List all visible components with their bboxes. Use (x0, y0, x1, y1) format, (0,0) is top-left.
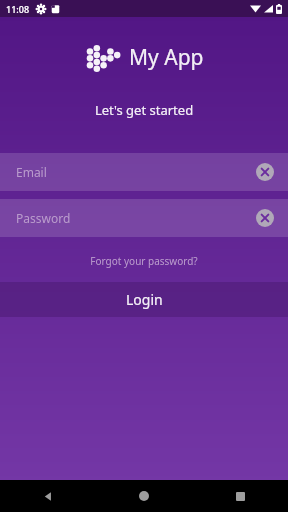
staticText: Let's get started (0, 101, 288, 119)
button[interactable]: Clear Password (256, 209, 274, 227)
staticText: Login (126, 290, 163, 309)
button[interactable]: Recents (192, 480, 288, 512)
button[interactable]: Forgot your password? (0, 239, 288, 282)
button[interactable]: Back (0, 480, 96, 512)
staticText: Email (16, 164, 47, 180)
staticText: Forgot your password? (90, 254, 198, 268)
button[interactable]: Home (96, 480, 192, 512)
staticText: 11:08 (6, 3, 30, 15)
button[interactable]: Password (0, 199, 288, 237)
button[interactable]: Email (0, 153, 288, 191)
staticText: My App (129, 43, 204, 72)
staticText: Password (16, 210, 71, 226)
button[interactable]: Clear Email (256, 163, 274, 181)
button[interactable]: Login (0, 282, 288, 317)
